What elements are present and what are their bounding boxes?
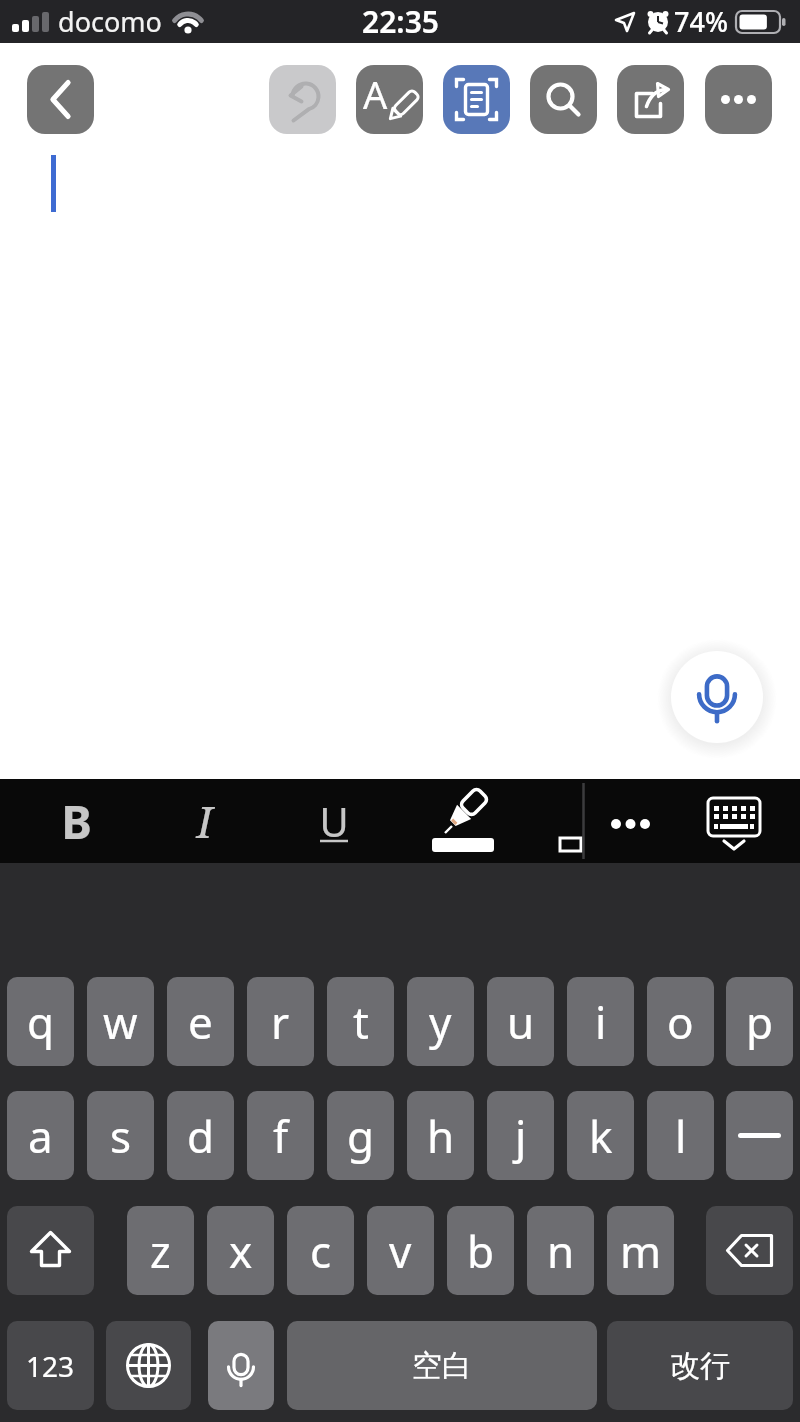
button[interactable]: x xyxy=(207,1206,274,1295)
staticText: A xyxy=(363,68,388,120)
button[interactable] xyxy=(671,651,763,743)
staticText: c xyxy=(310,1221,332,1281)
staticText: h xyxy=(427,1106,455,1166)
staticText: b xyxy=(467,1221,495,1281)
staticText: d xyxy=(187,1106,215,1166)
button[interactable] xyxy=(702,779,768,863)
button[interactable]: i xyxy=(567,977,634,1066)
button[interactable]: 空白 xyxy=(287,1321,597,1410)
staticText: B xyxy=(61,790,92,853)
button[interactable]: c xyxy=(287,1206,354,1295)
button[interactable]: k xyxy=(567,1091,634,1180)
staticText: I xyxy=(196,791,213,851)
button[interactable] xyxy=(617,65,684,134)
staticText: y xyxy=(429,992,452,1052)
staticText: q xyxy=(27,992,55,1052)
button[interactable]: q xyxy=(7,977,74,1066)
staticText: t xyxy=(353,992,369,1052)
staticText: n xyxy=(547,1221,575,1281)
button[interactable]: w xyxy=(87,977,154,1066)
button[interactable]: 改行 xyxy=(607,1321,793,1410)
staticText: e xyxy=(188,992,213,1052)
staticText: 74% xyxy=(674,3,728,40)
button[interactable]: a xyxy=(7,1091,74,1180)
button[interactable]: o xyxy=(647,977,714,1066)
button[interactable] xyxy=(706,1206,793,1295)
button[interactable]: t xyxy=(327,977,394,1066)
staticText: o xyxy=(667,992,694,1052)
button[interactable]: h xyxy=(407,1091,474,1180)
button[interactable] xyxy=(27,65,94,134)
staticText: i xyxy=(595,992,607,1052)
staticText: 改行 xyxy=(670,1347,730,1385)
button[interactable]: u xyxy=(487,977,554,1066)
button[interactable]: p xyxy=(726,977,793,1066)
button[interactable] xyxy=(726,1091,793,1180)
button[interactable] xyxy=(443,65,510,134)
button[interactable]: f xyxy=(247,1091,314,1180)
button[interactable]: z xyxy=(127,1206,194,1295)
button[interactable] xyxy=(430,779,496,863)
button[interactable] xyxy=(60,779,92,863)
staticText: 123 xyxy=(26,1347,75,1385)
staticText: z xyxy=(150,1221,171,1281)
button[interactable] xyxy=(269,65,336,134)
button[interactable]: s xyxy=(87,1091,154,1180)
staticText: U xyxy=(319,794,349,848)
staticText: w xyxy=(103,992,138,1052)
staticText: p xyxy=(746,992,774,1052)
button[interactable]: j xyxy=(487,1091,554,1180)
staticText: g xyxy=(347,1106,375,1166)
button[interactable] xyxy=(600,779,662,863)
button[interactable]: v xyxy=(367,1206,434,1295)
button[interactable]: l xyxy=(647,1091,714,1180)
staticText: docomo xyxy=(58,3,162,40)
button[interactable]: A xyxy=(356,65,423,134)
button[interactable]: e xyxy=(167,977,234,1066)
staticText: j xyxy=(515,1106,527,1166)
staticText: s xyxy=(110,1106,132,1166)
button[interactable] xyxy=(208,1321,274,1410)
button[interactable] xyxy=(7,1206,94,1295)
staticText: x xyxy=(229,1221,253,1281)
staticText: m xyxy=(620,1221,662,1281)
button[interactable]: m xyxy=(607,1206,674,1295)
button[interactable] xyxy=(705,65,772,134)
staticText: v xyxy=(389,1221,412,1281)
button[interactable]: 123 xyxy=(7,1321,94,1410)
button[interactable] xyxy=(106,1321,191,1410)
staticText: k xyxy=(589,1106,613,1166)
staticText: f xyxy=(273,1106,289,1166)
staticText: r xyxy=(271,992,290,1052)
button[interactable]: d xyxy=(167,1091,234,1180)
button[interactable]: y xyxy=(407,977,474,1066)
staticText: 22:35 xyxy=(362,1,439,42)
button[interactable] xyxy=(530,65,597,134)
button[interactable]: b xyxy=(447,1206,514,1295)
staticText: 空白 xyxy=(412,1347,472,1385)
button[interactable]: n xyxy=(527,1206,594,1295)
staticText: a xyxy=(28,1106,53,1166)
staticText: l xyxy=(675,1106,687,1166)
staticText: u xyxy=(507,992,535,1052)
button[interactable]: r xyxy=(247,977,314,1066)
button[interactable]: g xyxy=(327,1091,394,1180)
